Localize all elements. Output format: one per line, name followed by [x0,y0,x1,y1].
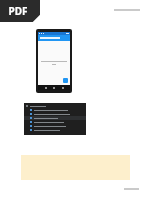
button[interactable] [30,124,86,128]
button[interactable] [30,108,86,112]
staticText: PDF [8,4,28,18]
button[interactable] [30,112,86,116]
button[interactable]: Add [63,78,68,83]
button[interactable] [30,116,86,120]
button[interactable]: PDF document [0,0,40,22]
button[interactable] [30,120,86,124]
button[interactable] [26,104,86,108]
button[interactable]: Android app screenshot [38,32,70,90]
button[interactable] [30,128,86,132]
button[interactable] [38,35,70,41]
